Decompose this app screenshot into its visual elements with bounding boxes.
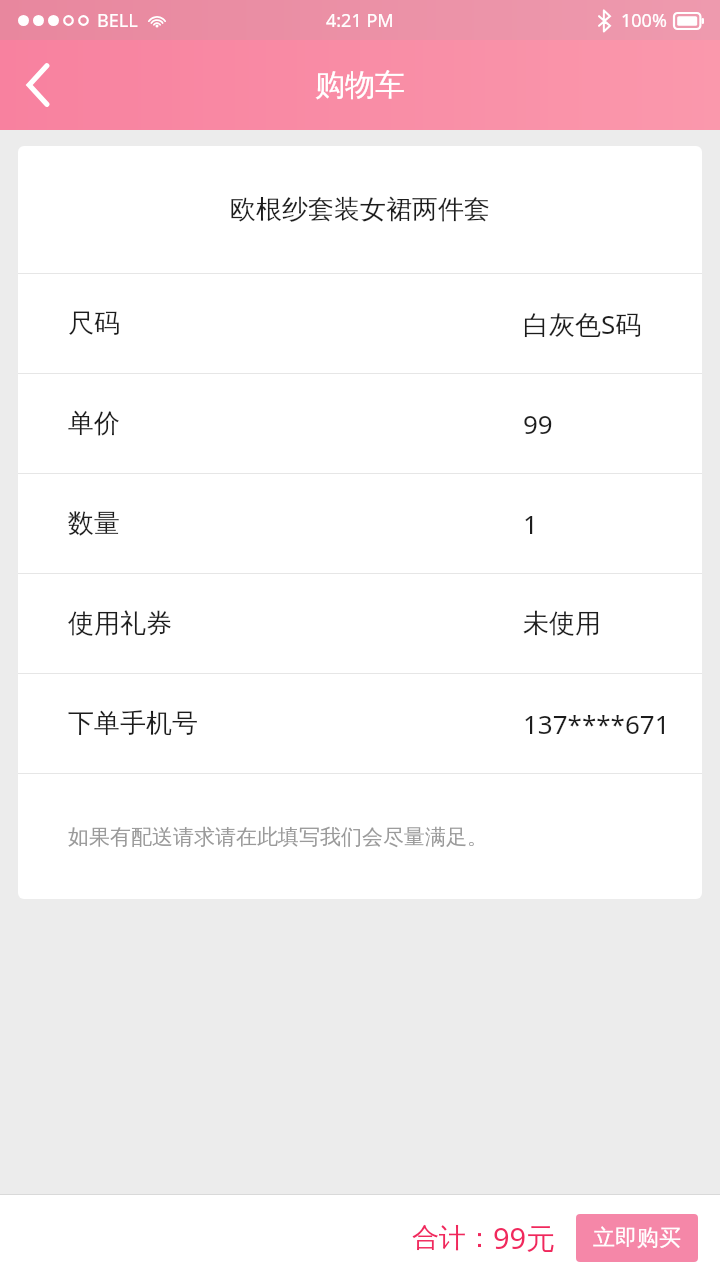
staticText: 137****671 <box>523 706 670 741</box>
staticText: 下单手机号 <box>68 707 198 740</box>
button[interactable]: 尺码 <box>18 274 702 373</box>
staticText: BELL <box>97 8 138 33</box>
button[interactable]: 使用礼券 <box>18 574 702 673</box>
staticText: 100% <box>621 8 667 33</box>
staticText: 数量 <box>68 507 120 540</box>
staticText: 欧根纱套装女裙两件套 <box>230 193 490 226</box>
button[interactable]: Back <box>0 40 76 130</box>
staticText: 合计： <box>412 1221 493 1255</box>
staticText: 如果有配送请求请在此填写我们会尽量满足。 <box>68 824 488 850</box>
staticText: 单价 <box>68 407 120 440</box>
staticText: 立即购买 <box>593 1224 681 1252</box>
staticText: 尺码 <box>68 307 120 340</box>
staticText: 99元 <box>493 1218 556 1258</box>
button[interactable]: 数量 <box>18 474 702 573</box>
button[interactable]: 如果有配送请求请在此填写我们会尽量满足。 <box>18 774 702 899</box>
staticText: 1 <box>523 506 538 541</box>
staticText: 购物车 <box>315 66 405 104</box>
button[interactable]: 单价 <box>18 374 702 473</box>
staticText: 白灰色S码 <box>523 306 642 342</box>
staticText: 未使用 <box>523 607 601 640</box>
button[interactable]: 欧根纱套装女裙两件套 <box>18 146 702 273</box>
staticText: 99 <box>523 406 553 441</box>
button[interactable]: 下单手机号 <box>18 674 702 773</box>
staticText: 4:21 PM <box>326 8 394 33</box>
staticText: 使用礼券 <box>68 607 172 640</box>
button[interactable]: 立即购买 <box>576 1214 698 1262</box>
